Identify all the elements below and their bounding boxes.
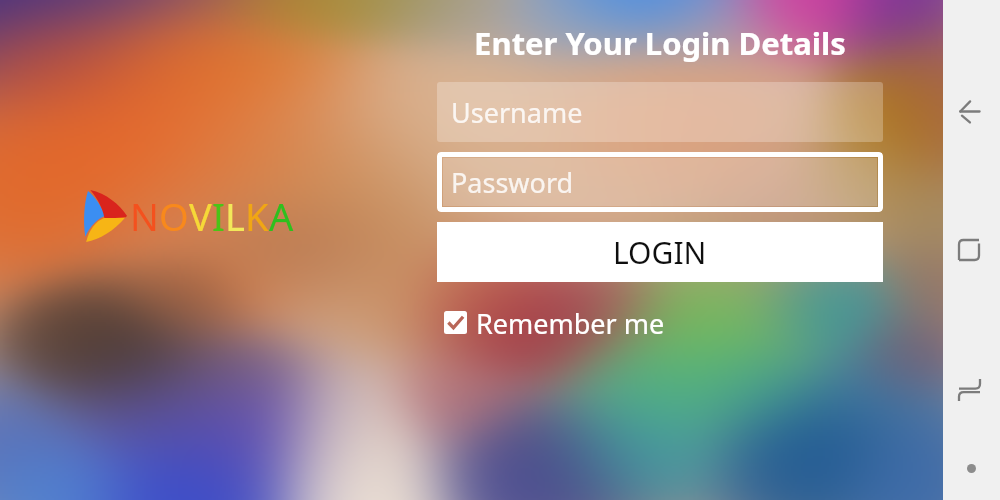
button[interactable]: Home <box>944 225 994 275</box>
button[interactable]: Recent apps <box>944 365 994 415</box>
button[interactable]: Password <box>443 158 877 206</box>
staticText: L <box>225 190 245 242</box>
staticText: Enter Your Login Details <box>437 22 883 64</box>
button[interactable]: Username <box>437 82 883 142</box>
staticText: Remember me <box>476 305 665 339</box>
staticText: LOGIN <box>613 232 707 273</box>
button[interactable]: Back <box>944 86 994 136</box>
staticText: Password <box>451 164 574 201</box>
staticText: Username <box>451 94 583 131</box>
button[interactable]: Remember me <box>444 305 665 339</box>
staticText: O <box>159 190 189 242</box>
staticText: V <box>189 190 212 242</box>
staticText: K <box>245 190 269 242</box>
staticText: I <box>212 190 225 242</box>
button[interactable]: LOGIN <box>437 222 883 282</box>
staticText: A <box>269 190 294 242</box>
staticText: N <box>130 190 159 242</box>
